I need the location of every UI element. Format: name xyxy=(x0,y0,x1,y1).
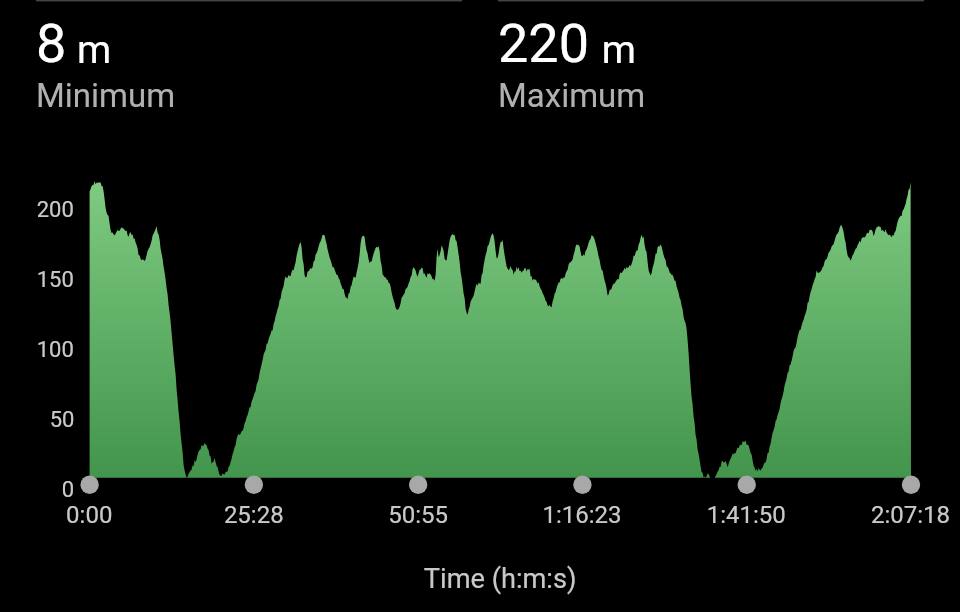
button[interactable]: Minimum elevation 8 m xyxy=(36,0,462,124)
button[interactable]: Elevation over time graph xyxy=(36,150,924,530)
button[interactable]: Maximum elevation 220 m xyxy=(498,0,924,124)
